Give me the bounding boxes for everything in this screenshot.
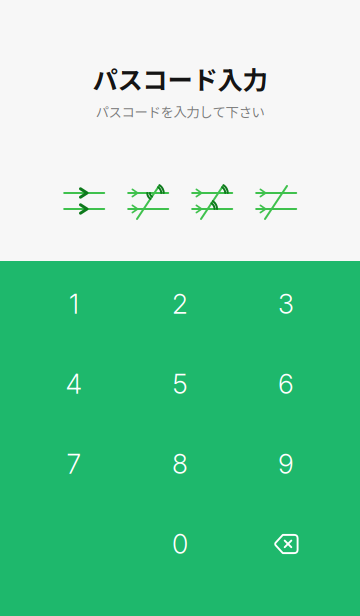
button[interactable]: Delete bbox=[233, 504, 339, 584]
staticText: 2 bbox=[172, 288, 188, 320]
button[interactable]: 9 bbox=[233, 424, 339, 504]
staticText: 5 bbox=[172, 368, 187, 400]
staticText: 3 bbox=[278, 288, 294, 320]
button[interactable]: 1 bbox=[21, 264, 127, 344]
staticText: 8 bbox=[172, 448, 188, 480]
staticText: 4 bbox=[65, 368, 82, 400]
button[interactable]: 6 bbox=[233, 344, 339, 424]
button[interactable]: 7 bbox=[21, 424, 127, 504]
button[interactable]: 5 bbox=[127, 344, 233, 424]
staticText: 6 bbox=[278, 368, 294, 400]
staticText: 0 bbox=[172, 528, 188, 560]
button[interactable]: 2 bbox=[127, 264, 233, 344]
staticText: パスコードを入力して下さい bbox=[95, 102, 264, 121]
staticText: 9 bbox=[278, 448, 294, 480]
button[interactable]: 4 bbox=[21, 344, 127, 424]
staticText: パスコード入力 bbox=[92, 60, 267, 97]
button[interactable]: 8 bbox=[127, 424, 233, 504]
staticText: 1 bbox=[69, 288, 79, 320]
staticText: 7 bbox=[66, 448, 81, 480]
button[interactable]: 0 bbox=[127, 504, 233, 584]
button[interactable]: 3 bbox=[233, 264, 339, 344]
